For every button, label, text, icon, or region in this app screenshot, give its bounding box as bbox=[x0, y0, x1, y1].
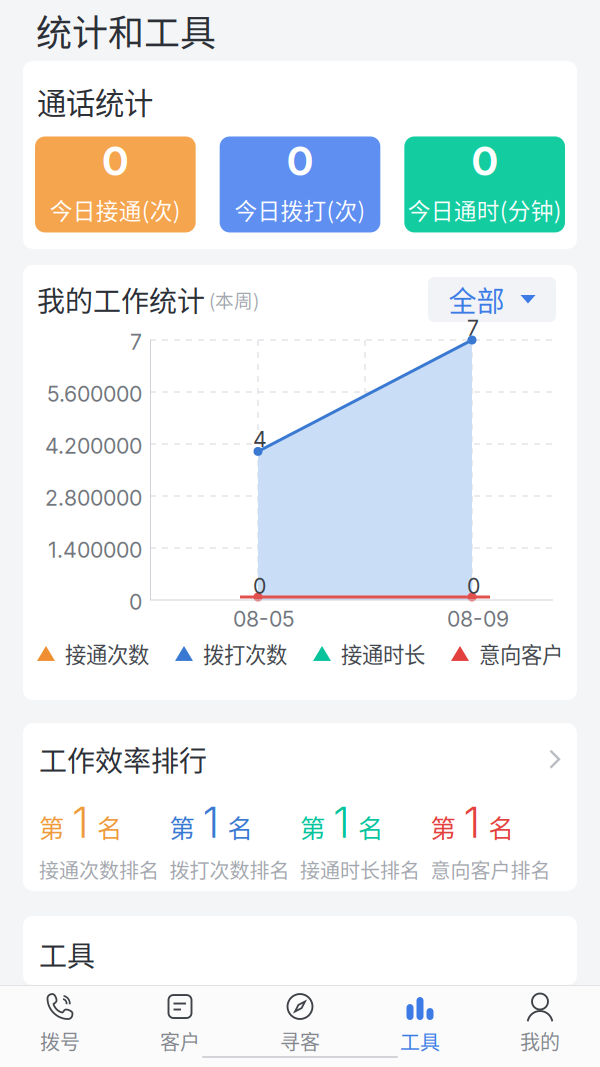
staticText: 我的 bbox=[520, 1026, 560, 1055]
staticText: 拨号 bbox=[40, 1026, 80, 1055]
staticText: 第 bbox=[300, 808, 325, 845]
staticText: 1 bbox=[202, 796, 219, 848]
staticText: 工作效率排行 bbox=[39, 739, 207, 779]
staticText: 0 bbox=[102, 137, 128, 185]
button[interactable]: 工作效率排行 bbox=[23, 723, 577, 891]
staticText: 名 bbox=[488, 808, 513, 845]
staticText: 0 bbox=[253, 573, 266, 599]
staticText: 统计和工具 bbox=[36, 4, 216, 56]
staticText: 工具 bbox=[39, 934, 95, 974]
staticText: 接通次数排名 bbox=[39, 855, 159, 884]
staticText: 4.200000 bbox=[45, 433, 142, 459]
staticText: 08-05 bbox=[233, 606, 295, 632]
staticText: 1 bbox=[72, 796, 89, 848]
staticText: 1.400000 bbox=[48, 537, 142, 563]
staticText: (本周) bbox=[205, 286, 259, 313]
staticText: 今日接通(次) bbox=[50, 193, 181, 226]
staticText: 第 bbox=[39, 808, 64, 845]
button[interactable]: 0 bbox=[404, 136, 565, 232]
staticText: 寻客 bbox=[280, 1026, 320, 1055]
button[interactable]: 客户 bbox=[120, 986, 240, 1051]
staticText: 第 bbox=[430, 808, 455, 845]
staticText: 意向客户排名 bbox=[430, 855, 550, 884]
button[interactable]: 0 bbox=[220, 136, 380, 232]
staticText: 第 bbox=[169, 808, 194, 845]
staticText: 我的工作统计 bbox=[37, 279, 205, 320]
staticText: 08-09 bbox=[447, 606, 509, 632]
staticText: 接通时长排名 bbox=[300, 855, 420, 884]
staticText: 意向客户 bbox=[479, 638, 563, 669]
staticText: 0 bbox=[129, 589, 142, 615]
staticText: 客户 bbox=[160, 1026, 200, 1055]
staticText: 工具 bbox=[400, 1026, 440, 1055]
staticText: 4 bbox=[253, 426, 267, 452]
staticText: 1 bbox=[463, 796, 480, 848]
button[interactable]: 我的 bbox=[480, 986, 600, 1051]
button[interactable]: 拨号 bbox=[0, 986, 120, 1051]
staticText: 名 bbox=[227, 808, 252, 845]
staticText: 名 bbox=[97, 808, 122, 845]
staticText: 7 bbox=[467, 315, 479, 341]
staticText: 接通时长 bbox=[341, 638, 425, 669]
staticText: 0 bbox=[287, 137, 313, 185]
staticText: 接通次数 bbox=[65, 638, 149, 669]
staticText: 2.800000 bbox=[45, 485, 142, 511]
staticText: 1 bbox=[333, 796, 350, 848]
staticText: 拨打次数 bbox=[203, 638, 287, 669]
staticText: 7 bbox=[130, 329, 142, 355]
staticText: 全部 bbox=[448, 279, 504, 320]
button[interactable]: 寻客 bbox=[240, 986, 360, 1051]
staticText: 0 bbox=[472, 137, 498, 185]
button[interactable]: 工具 bbox=[360, 986, 480, 1051]
staticText: 名 bbox=[358, 808, 383, 845]
button[interactable]: 0 bbox=[35, 136, 196, 232]
staticText: 0 bbox=[467, 573, 480, 599]
staticText: 通话统计 bbox=[37, 80, 153, 122]
staticText: 今日拨打(次) bbox=[234, 193, 365, 226]
staticText: 今日通时(分钟) bbox=[408, 193, 562, 226]
staticText: 5.600000 bbox=[47, 381, 142, 407]
staticText: 拨打次数排名 bbox=[169, 855, 289, 884]
button[interactable]: 全部 bbox=[428, 277, 556, 322]
